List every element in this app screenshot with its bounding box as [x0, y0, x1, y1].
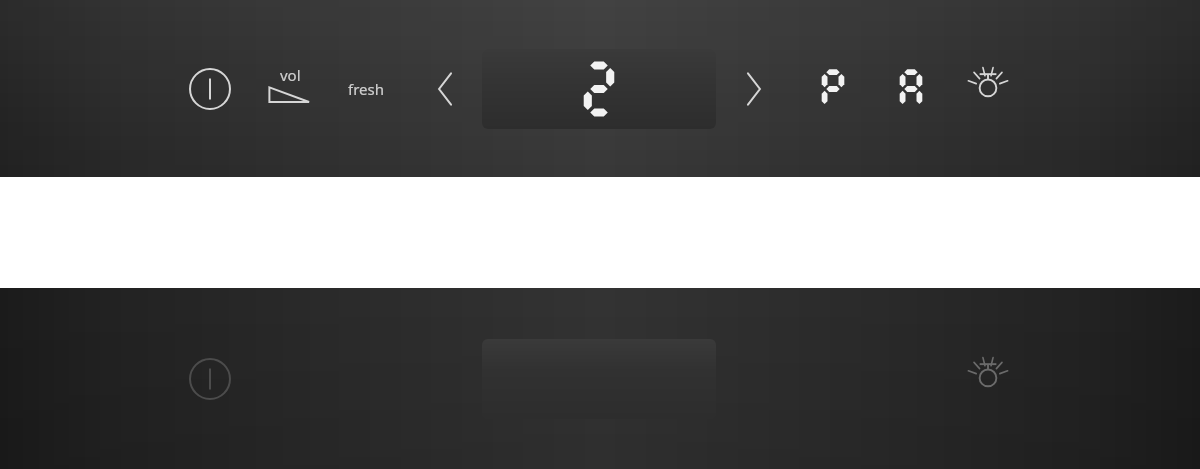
button[interactable]: fresh — [334, 74, 398, 104]
button[interactable] — [482, 49, 716, 129]
button[interactable]: Power off — [183, 352, 237, 406]
staticText: fresh — [348, 79, 384, 99]
button[interactable]: Auto — [887, 62, 935, 116]
button[interactable]: Next — [733, 63, 777, 115]
button[interactable]: Program — [809, 62, 857, 116]
button[interactable] — [482, 339, 716, 419]
button[interactable]: Light — [961, 62, 1015, 116]
button[interactable]: Light off — [961, 352, 1015, 406]
staticText: vol — [280, 65, 301, 85]
button[interactable]: Power — [183, 62, 237, 116]
button[interactable]: Previous — [422, 63, 466, 115]
button[interactable]: Volume — [257, 62, 319, 116]
